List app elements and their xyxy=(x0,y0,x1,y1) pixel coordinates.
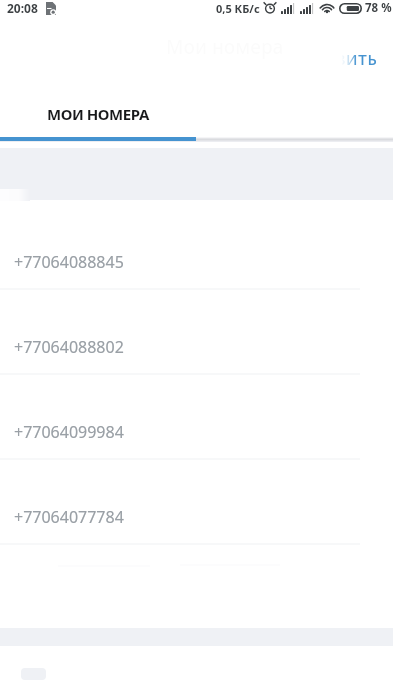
staticText: +77064088802 xyxy=(14,336,124,358)
staticText: 78 % xyxy=(365,0,392,16)
staticText: 0,5 КБ/c xyxy=(216,1,260,16)
button[interactable]: ДОБАВИТЬ xyxy=(288,43,381,79)
button[interactable]: МОИ НОМЕРА xyxy=(0,96,196,137)
button[interactable]: +77064088802 xyxy=(0,290,393,375)
staticText: +77064099984 xyxy=(14,421,124,443)
staticText: МОИ НОМЕРА xyxy=(47,104,149,124)
staticText: +77064077784 xyxy=(14,506,124,528)
staticText: 20:08 xyxy=(7,0,38,16)
staticText: ДОБАВИТЬ xyxy=(291,49,378,69)
button[interactable]: +77064088845 xyxy=(0,205,393,290)
button[interactable]: +77064099984 xyxy=(0,375,393,460)
button[interactable]: +77064077784 xyxy=(0,460,393,545)
staticText: +77064088845 xyxy=(14,251,124,273)
